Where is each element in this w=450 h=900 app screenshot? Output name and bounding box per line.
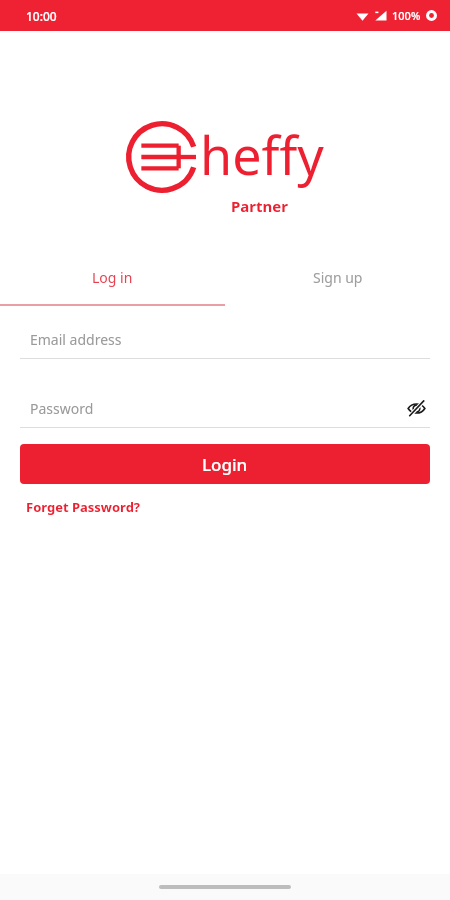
staticText: 100% bbox=[392, 8, 421, 23]
staticText: Password bbox=[30, 399, 94, 418]
staticText: Log in bbox=[92, 268, 133, 287]
button[interactable]: Show password bbox=[404, 396, 428, 420]
staticText: Email address bbox=[30, 330, 122, 349]
staticText: Login bbox=[202, 453, 248, 476]
button[interactable]: Email address bbox=[0, 320, 450, 358]
staticText: Partner bbox=[231, 196, 288, 216]
button[interactable]: Login bbox=[20, 444, 430, 484]
button[interactable]: Password bbox=[0, 389, 450, 427]
staticText: Forget Password? bbox=[26, 498, 141, 516]
button[interactable]: Sign up bbox=[225, 260, 450, 295]
staticText: heffy bbox=[200, 119, 324, 190]
button[interactable]: Log in bbox=[0, 260, 225, 295]
staticText: Sign up bbox=[313, 268, 363, 287]
staticText: 10:00 bbox=[26, 8, 57, 24]
